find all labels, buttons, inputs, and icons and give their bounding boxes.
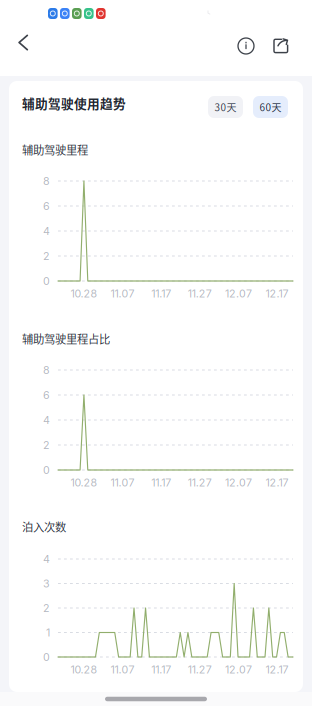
staticText: 0 — [43, 274, 50, 287]
staticText: 6 — [43, 199, 50, 212]
staticText: 11.17 — [151, 476, 171, 489]
staticText: 11.27 — [188, 287, 212, 300]
staticText: 11.17 — [151, 663, 171, 676]
button[interactable]: Back — [9, 30, 49, 76]
staticText: 10.28 — [70, 663, 97, 676]
staticText: 泊入次数 — [22, 518, 66, 535]
staticText: 1 — [46, 626, 50, 639]
staticText: 4 — [43, 224, 50, 237]
staticText: 12.17 — [265, 663, 288, 676]
staticText: 11.07 — [111, 287, 135, 300]
staticText: 3 — [43, 577, 50, 590]
staticText: 11.07 — [111, 476, 135, 489]
button[interactable]: 60天 — [253, 96, 288, 118]
staticText: 11.17 — [151, 287, 171, 300]
staticText: 11.27 — [188, 663, 212, 676]
staticText: 11.07 — [111, 663, 135, 676]
staticText: 0 — [43, 650, 50, 663]
staticText: 2 — [43, 249, 50, 262]
staticText: 12.17 — [265, 287, 288, 300]
staticText: 60天 — [259, 100, 281, 114]
staticText: 10.28 — [70, 476, 97, 489]
staticText: 4 — [43, 413, 50, 426]
staticText: 辅助驾驶里程 — [22, 141, 88, 158]
staticText: 12.17 — [265, 476, 288, 489]
staticText: 辅助驾驶里程占比 — [22, 330, 110, 347]
staticText: 10.28 — [70, 287, 97, 300]
staticText: 2 — [43, 438, 50, 451]
staticText: 30天 — [214, 100, 236, 114]
staticText: 6 — [43, 388, 50, 401]
button[interactable]: Information — [234, 34, 258, 58]
staticText: 2 — [43, 601, 50, 614]
button[interactable]: 30天 — [208, 96, 243, 118]
staticText: 11.27 — [188, 476, 212, 489]
staticText: 辅助驾驶使用趋势 — [22, 94, 126, 112]
staticText: 0 — [43, 463, 50, 476]
staticText: 8 — [43, 174, 50, 187]
staticText: 12.07 — [225, 663, 252, 676]
button[interactable]: Share — [269, 34, 293, 58]
staticText: 12.07 — [225, 476, 252, 489]
staticText: 4 — [43, 552, 50, 565]
staticText: 12.07 — [225, 287, 252, 300]
staticText: 8 — [43, 363, 50, 376]
